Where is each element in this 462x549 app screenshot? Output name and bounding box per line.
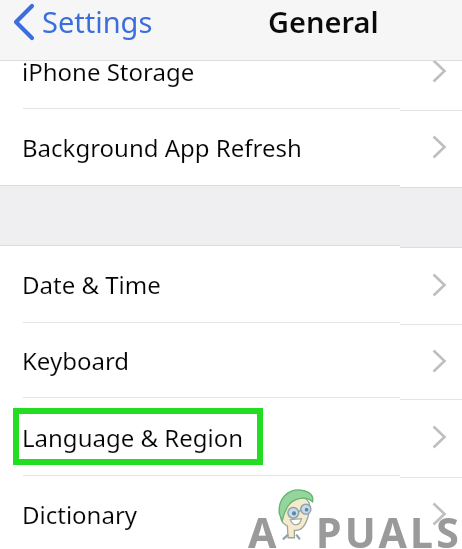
- button[interactable]: iPhone Storage: [0, 35, 462, 111]
- staticText: Date & Time: [22, 270, 161, 303]
- button[interactable]: Date & Time: [0, 248, 462, 325]
- staticText: General: [268, 2, 379, 41]
- staticText: Date & Time: [22, 268, 161, 301]
- button[interactable]: iPhone Storage: [0, 33, 462, 109]
- staticText: A: [248, 504, 277, 549]
- staticText: Keyboard: [22, 344, 130, 377]
- button[interactable]: Keyboard: [0, 323, 462, 398]
- button[interactable]: Date & Time: [0, 246, 462, 323]
- button[interactable]: Language & Region: [0, 398, 462, 476]
- button[interactable]: Language & Region: [0, 400, 462, 478]
- button[interactable]: Keyboard: [0, 325, 462, 400]
- button[interactable]: Background App Refresh: [0, 111, 462, 187]
- staticText: PUALS: [316, 504, 462, 549]
- staticText: Background App Refresh: [22, 133, 302, 166]
- button[interactable]: Background App Refresh: [0, 109, 462, 185]
- staticText: Language & Region: [22, 423, 244, 456]
- staticText: iPhone Storage: [22, 57, 195, 90]
- staticText: Dictionary: [22, 500, 138, 533]
- staticText: Background App Refresh: [22, 131, 302, 164]
- button[interactable]: Dictionary: [0, 478, 462, 549]
- staticText: Dictionary: [22, 498, 138, 531]
- staticText: Language & Region: [22, 421, 244, 454]
- staticText: iPhone Storage: [22, 55, 195, 88]
- button[interactable]: Dictionary: [0, 476, 462, 549]
- staticText: Keyboard: [22, 346, 130, 379]
- staticText: Settings: [42, 2, 153, 41]
- button[interactable]: Settings: [0, 2, 161, 41]
